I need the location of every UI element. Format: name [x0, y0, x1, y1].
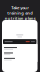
staticText: Take your training and nutrition plans a…: [4, 5, 35, 26]
